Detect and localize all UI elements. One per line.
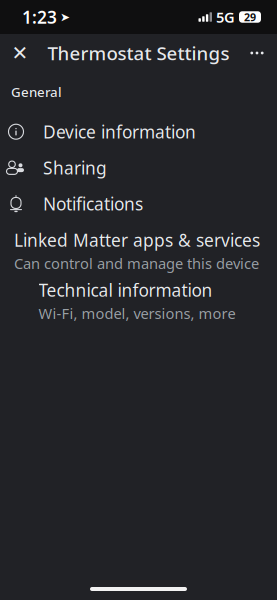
staticText: Remove device bbox=[43, 577, 165, 600]
staticText: Can control and manage this device bbox=[14, 253, 259, 273]
button[interactable]: Linked Matter apps & services bbox=[3, 228, 274, 274]
staticText: 5G bbox=[216, 7, 235, 27]
staticText: 29 bbox=[244, 10, 256, 24]
staticText: Linked Matter apps & services bbox=[14, 228, 260, 251]
button[interactable]: Technical information bbox=[27, 278, 249, 324]
staticText: Technical information bbox=[38, 278, 212, 301]
button[interactable]: Notifications bbox=[0, 186, 277, 222]
staticText: Thermostat Settings bbox=[47, 41, 229, 65]
button[interactable]: More options bbox=[237, 34, 277, 72]
staticText: Sharing bbox=[43, 156, 107, 179]
button[interactable]: Device information bbox=[0, 114, 277, 150]
staticText: 1:23 bbox=[22, 5, 57, 28]
staticText: ➤ bbox=[60, 10, 70, 24]
button[interactable]: Sharing bbox=[0, 150, 277, 186]
button[interactable]: Close bbox=[0, 34, 40, 72]
staticText: Wi-Fi, model, versions, more bbox=[38, 303, 235, 323]
staticText: General bbox=[11, 83, 62, 101]
staticText: Notifications bbox=[43, 192, 143, 215]
staticText: ✕ bbox=[11, 42, 28, 64]
button[interactable]: Remove device bbox=[0, 571, 277, 600]
staticText: Device information bbox=[43, 120, 196, 143]
